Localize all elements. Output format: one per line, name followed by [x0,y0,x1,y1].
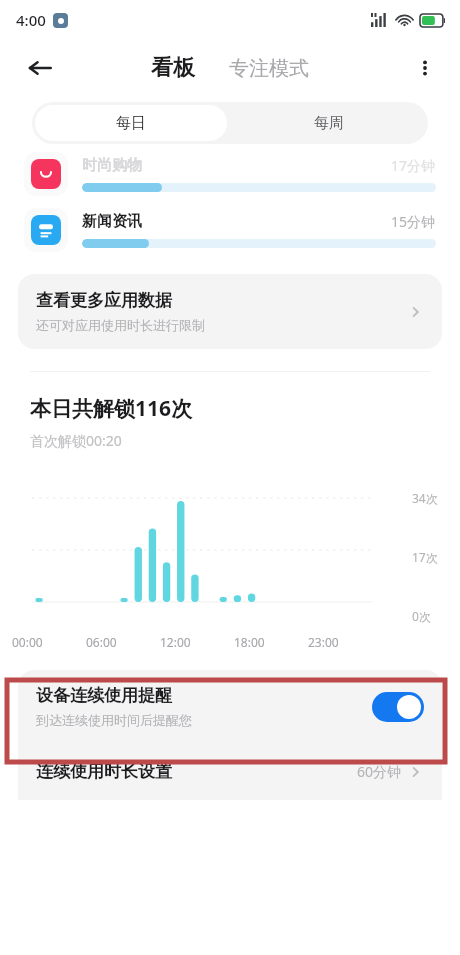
staticText: 0次 [412,608,431,624]
button[interactable]: Toggle reminder [372,692,424,722]
staticText: 06:00 [86,634,117,650]
staticText: 看板 [151,54,195,82]
button[interactable]: Back [18,46,62,90]
staticText: 4:00 [16,10,46,30]
staticText: 23:00 [308,634,339,650]
staticText: 34次 [412,490,438,506]
staticText: 每日 [116,114,146,133]
button[interactable]: 设备连续使用提醒 [18,670,442,743]
button[interactable]: 新闻资讯 [0,208,460,252]
staticText: 到达连续使用时间后提醒您 [36,712,192,728]
staticText: 连续使用时长设置 [36,761,172,782]
staticText: 查看更多应用数据 [36,290,172,311]
button[interactable]: 专注模式 [223,52,315,85]
staticText: 17次 [412,549,438,565]
staticText: 本日共解锁116次 [30,394,193,423]
staticText: 17分钟 [391,156,436,175]
button[interactable]: 时尚购物 [0,152,460,196]
staticText: 时尚购物 [82,156,142,175]
staticText: 18:00 [234,634,265,650]
staticText: 还可对应用使用时长进行限制 [36,317,205,333]
staticText: 00:00 [12,634,43,650]
staticText: 首次解锁00:20 [30,431,122,450]
staticText: 设备连续使用提醒 [36,685,172,706]
staticText: 12:00 [160,634,191,650]
staticText: 专注模式 [229,56,309,81]
button[interactable]: 连续使用时长设置 [18,743,442,800]
staticText: 新闻资讯 [82,212,142,231]
button[interactable]: 查看更多应用数据 [18,274,442,349]
staticText: 60分钟 [357,762,402,781]
button[interactable]: 每日 [35,105,227,141]
button[interactable]: 看板 [145,50,201,86]
staticText: 15分钟 [391,212,436,231]
button[interactable]: More options [404,47,446,89]
button[interactable]: 每周 [230,102,428,144]
staticText: 每周 [314,114,344,133]
